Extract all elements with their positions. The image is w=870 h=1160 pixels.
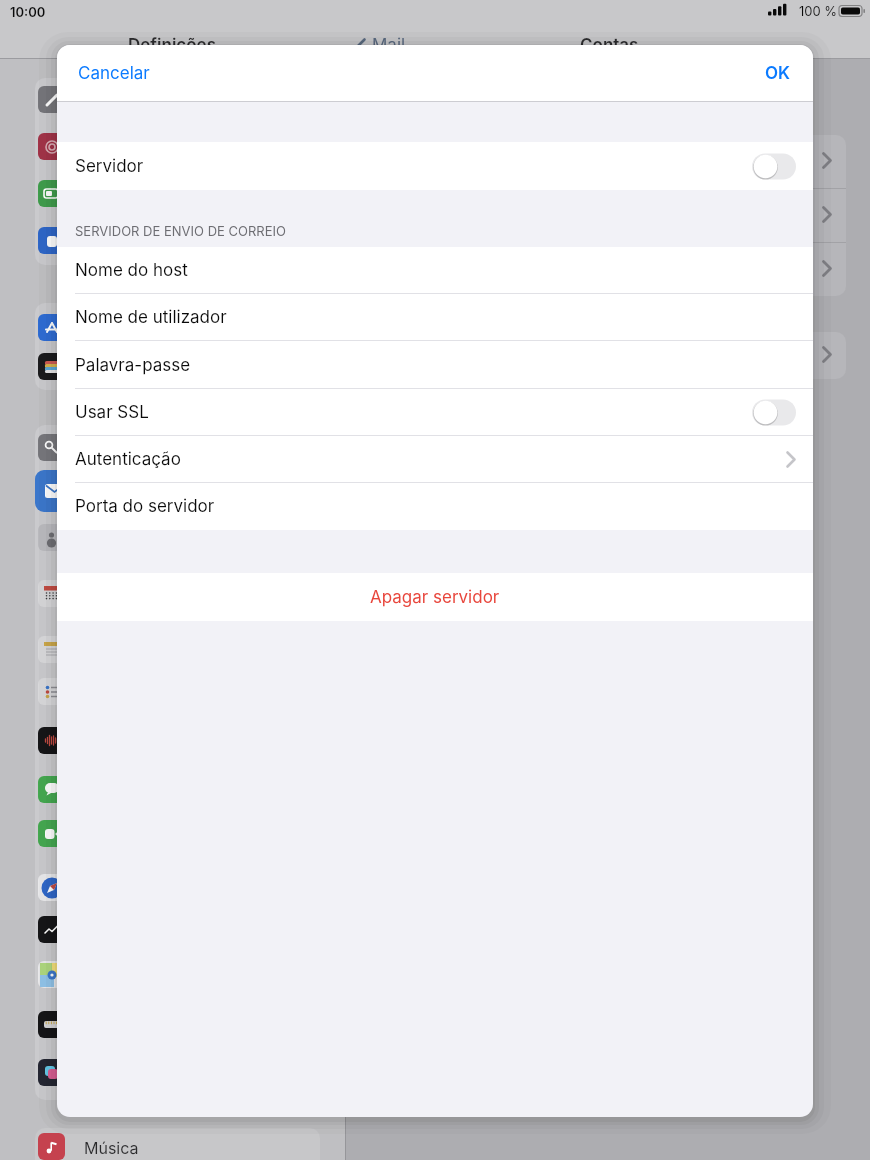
button[interactable]: Palavra-passe — [57, 341, 813, 389]
staticText: Nome do host — [75, 260, 188, 281]
staticText: Autenticação — [75, 449, 181, 470]
staticText: 100 % — [799, 3, 838, 19]
staticText: Música — [84, 1138, 139, 1157]
staticText: Porta do servidor — [75, 496, 215, 517]
staticText: OK — [765, 63, 791, 84]
button[interactable]: Usar SSL — [57, 389, 813, 436]
button[interactable]: Autenticação — [57, 436, 813, 483]
button[interactable]: Nome do host — [57, 247, 813, 294]
button[interactable]: Apagar servidor — [57, 573, 813, 621]
button[interactable]: Nome de utilizador — [57, 294, 813, 341]
button[interactable]: OK — [765, 63, 791, 84]
button[interactable]: Cancelar — [78, 63, 150, 84]
staticText: Apagar servidor — [370, 587, 500, 608]
staticText: Cancelar — [78, 63, 150, 84]
staticText: Contas — [580, 35, 639, 56]
button[interactable]: Porta do servidor — [57, 483, 813, 530]
staticText: Definições — [128, 35, 216, 56]
staticText: Usar SSL — [75, 402, 149, 423]
staticText: Palavra-passe — [75, 355, 191, 376]
staticText: 10:00 — [10, 4, 46, 20]
staticText: Mail — [372, 35, 406, 56]
staticText: Servidor — [75, 156, 144, 177]
staticText: SERVIDOR DE ENVIO DE CORREIO — [75, 223, 286, 239]
button[interactable] — [752, 153, 796, 180]
button[interactable] — [752, 399, 796, 426]
button[interactable]: Servidor — [57, 142, 813, 190]
staticText: Nome de utilizador — [75, 307, 227, 328]
